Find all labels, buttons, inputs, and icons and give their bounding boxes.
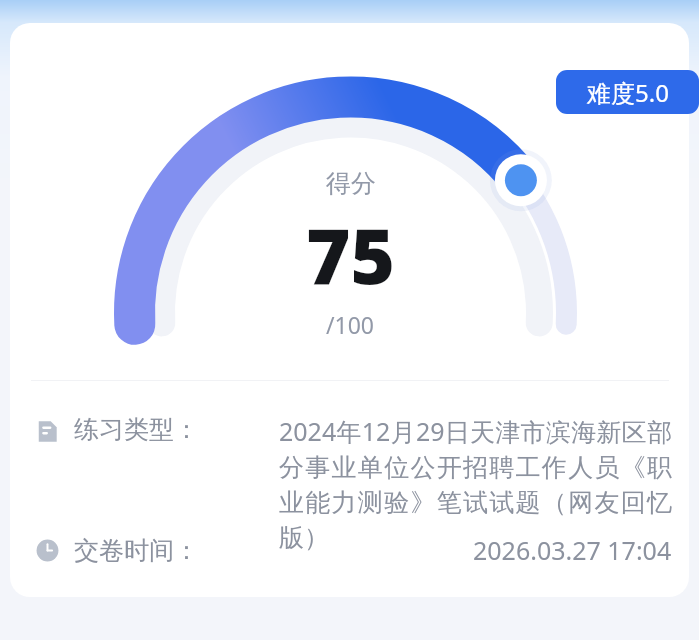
- staticText: 2026.03.27 17:04: [473, 533, 672, 567]
- button[interactable]: 难度5.0: [556, 70, 699, 114]
- other: 练习类型: [36, 420, 59, 443]
- staticText: 练习类型：: [74, 414, 199, 445]
- staticText: 难度5.0: [587, 76, 669, 109]
- button[interactable]: 练习类型: [36, 414, 672, 554]
- staticText: /100: [326, 309, 375, 340]
- other: 交卷时间: [36, 539, 59, 562]
- button[interactable]: 交卷时间: [36, 533, 672, 567]
- staticText: 2024年12月29日天津市滨海新区部分事业单位公开招聘工作人员《职业能力测验》…: [279, 414, 672, 554]
- staticText: 得分: [326, 168, 376, 199]
- staticText: 交卷时间：: [74, 535, 199, 566]
- staticText: 75: [306, 203, 396, 307]
